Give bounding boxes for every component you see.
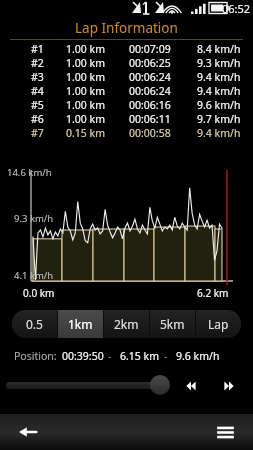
staticText: 0.0 km <box>23 286 55 300</box>
staticText: 2km <box>114 316 139 332</box>
staticText: #6 <box>31 112 44 126</box>
staticText: 14.6 km/h <box>7 166 52 179</box>
staticText: #4 <box>31 84 44 98</box>
staticText: 9.6 km/h <box>176 349 220 363</box>
staticText: 9.4 km/h <box>197 126 241 140</box>
staticText: 00:06:24 <box>129 70 171 84</box>
staticText: Position: <box>14 349 57 363</box>
staticText: 00:06:11 <box>129 112 171 126</box>
staticText: #3 <box>31 70 44 84</box>
button[interactable]: #5 <box>0 98 253 112</box>
staticText: 6.15 km <box>120 349 159 363</box>
staticText: 0.5 <box>26 316 43 332</box>
button[interactable]: 2km <box>104 310 149 338</box>
button[interactable]: Fast forward <box>216 373 242 399</box>
button[interactable]: #7 <box>0 126 253 140</box>
staticText: 1.00 km <box>66 112 105 126</box>
staticText: 00:06:24 <box>129 84 171 98</box>
staticText: 4.1 km/h <box>14 269 54 282</box>
staticText: Lap <box>208 316 229 332</box>
staticText: 9.4 km/h <box>197 84 241 98</box>
button[interactable]: Back <box>12 416 44 448</box>
staticText: 9.3 km/h <box>197 56 241 70</box>
staticText: - <box>108 349 112 363</box>
staticText: 1.00 km <box>66 56 105 70</box>
button[interactable]: Lap <box>196 310 241 338</box>
staticText: #5 <box>31 98 44 112</box>
staticText: 9.3 km/h <box>14 212 54 225</box>
staticText: #1 <box>31 42 44 56</box>
staticText: 9.6 km/h <box>197 98 241 112</box>
staticText: 1.00 km <box>66 42 105 56</box>
button[interactable]: Menu <box>209 416 241 448</box>
button[interactable]: Rewind <box>178 373 204 399</box>
button[interactable]: #3 <box>0 70 253 84</box>
staticText: 00:00:58 <box>129 126 171 140</box>
button[interactable]: 1km <box>58 310 103 338</box>
staticText: 06:52 <box>222 1 251 16</box>
button[interactable]: #1 <box>0 42 253 56</box>
staticText: 00:07:09 <box>129 42 171 56</box>
staticText: 1.00 km <box>66 84 105 98</box>
staticText: 9.4 km/h <box>197 70 241 84</box>
staticText: 00:06:25 <box>129 56 171 70</box>
button[interactable]: #2 <box>0 56 253 70</box>
staticText: 8.4 km/h <box>197 42 241 56</box>
staticText: Lap Information <box>75 19 178 37</box>
staticText: 5km <box>160 316 185 332</box>
staticText: #2 <box>31 56 44 70</box>
staticText: 1.00 km <box>66 70 105 84</box>
staticText: 1.00 km <box>66 98 105 112</box>
button[interactable]: 5km <box>150 310 195 338</box>
button[interactable]: 0.5 <box>12 310 57 338</box>
staticText: 9.7 km/h <box>197 112 241 126</box>
staticText: 6.2 km <box>197 286 229 300</box>
button[interactable]: #6 <box>0 112 253 126</box>
staticText: #7 <box>31 126 44 140</box>
button[interactable]: Playback position <box>4 372 176 398</box>
staticText: - <box>164 349 168 363</box>
staticText: 00:39:50 <box>62 349 104 363</box>
button[interactable]: #4 <box>0 84 253 98</box>
staticText: 1km <box>68 316 93 332</box>
staticText: 00:06:16 <box>129 98 171 112</box>
staticText: 0.15 km <box>66 126 105 140</box>
